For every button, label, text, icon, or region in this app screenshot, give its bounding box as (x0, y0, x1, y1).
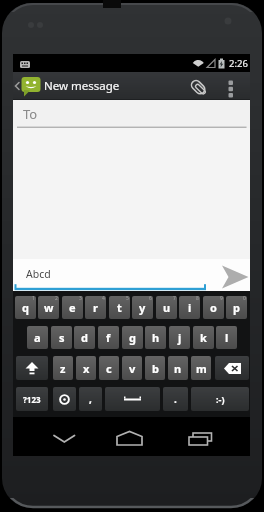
button[interactable]: . (163, 387, 188, 411)
button[interactable] (53, 387, 76, 411)
button[interactable] (179, 417, 219, 456)
button[interactable]: j (169, 326, 190, 349)
staticText: g (129, 330, 136, 345)
button[interactable]: i (179, 296, 200, 319)
button[interactable]: c (99, 356, 119, 380)
staticText: 5 (126, 296, 129, 302)
staticText: c (106, 361, 112, 376)
button[interactable]: v (122, 356, 142, 380)
staticText: ?123 (23, 394, 41, 405)
button[interactable]: w (38, 296, 59, 319)
staticText: To (23, 105, 38, 123)
staticText: 6 (149, 296, 152, 302)
staticText: 2:26 (229, 57, 248, 70)
button[interactable] (13, 259, 250, 291)
staticText: 0 (243, 296, 246, 302)
button[interactable]: t (109, 296, 130, 319)
button[interactable]: , (79, 387, 102, 411)
button[interactable]: d (74, 326, 95, 349)
staticText: w (44, 300, 54, 315)
staticText: 3 (79, 296, 82, 302)
staticText: 7 (173, 296, 176, 302)
staticText: k (200, 330, 207, 345)
button[interactable]: a (27, 326, 48, 349)
staticText: s (59, 330, 65, 345)
staticText: x (83, 361, 90, 376)
staticText: 2 (55, 296, 58, 302)
staticText: New message (44, 78, 120, 94)
staticText: t (117, 300, 122, 315)
button[interactable]: f (98, 326, 119, 349)
button[interactable] (108, 417, 148, 456)
staticText: p (233, 300, 240, 315)
button[interactable]: p (226, 296, 247, 319)
staticText: d (81, 330, 88, 345)
staticText: z (60, 361, 66, 376)
staticText: a (34, 330, 41, 345)
button[interactable] (105, 387, 160, 411)
button[interactable]: y (132, 296, 153, 319)
staticText: q (22, 300, 29, 315)
button[interactable]: r (85, 296, 106, 319)
staticText: h (152, 330, 160, 345)
staticText: , (89, 392, 92, 406)
button[interactable] (13, 100, 250, 128)
staticText: i (188, 300, 192, 315)
staticText: o (210, 300, 217, 315)
button[interactable]: k (193, 326, 214, 349)
staticText: j (178, 330, 182, 345)
staticText: l (225, 330, 229, 345)
button[interactable] (16, 356, 48, 380)
staticText: :-) (216, 393, 225, 405)
staticText: 8 (196, 296, 199, 302)
staticText: Abcd (26, 267, 51, 281)
button[interactable]: u (156, 296, 177, 319)
button[interactable] (44, 417, 84, 456)
staticText: b (152, 361, 159, 376)
button[interactable]: g (122, 326, 143, 349)
button[interactable]: e (62, 296, 83, 319)
staticText: f (106, 330, 111, 345)
button[interactable] (215, 356, 249, 380)
staticText: u (163, 300, 171, 315)
staticText: 9 (220, 296, 223, 302)
staticText: 4 (102, 296, 105, 302)
button[interactable]: m (191, 356, 211, 380)
button[interactable]: o (203, 296, 224, 319)
staticText: v (129, 361, 136, 376)
button[interactable]: b (145, 356, 165, 380)
button[interactable]: q (15, 296, 36, 319)
staticText: y (139, 300, 146, 315)
staticText: e (69, 300, 76, 315)
button[interactable]: :-) (191, 387, 249, 411)
staticText: 1 (32, 296, 35, 302)
button[interactable]: n (168, 356, 188, 380)
staticText: . (174, 392, 177, 406)
button[interactable]: l (216, 326, 237, 349)
button[interactable]: x (76, 356, 96, 380)
button[interactable] (13, 72, 250, 100)
staticText: m (196, 361, 207, 376)
button[interactable]: z (53, 356, 73, 380)
button[interactable] (213, 259, 250, 291)
button[interactable]: h (145, 326, 166, 349)
staticText: r (93, 300, 98, 315)
button[interactable]: s (51, 326, 72, 349)
button[interactable]: ?123 (16, 387, 48, 411)
staticText: n (174, 361, 182, 376)
